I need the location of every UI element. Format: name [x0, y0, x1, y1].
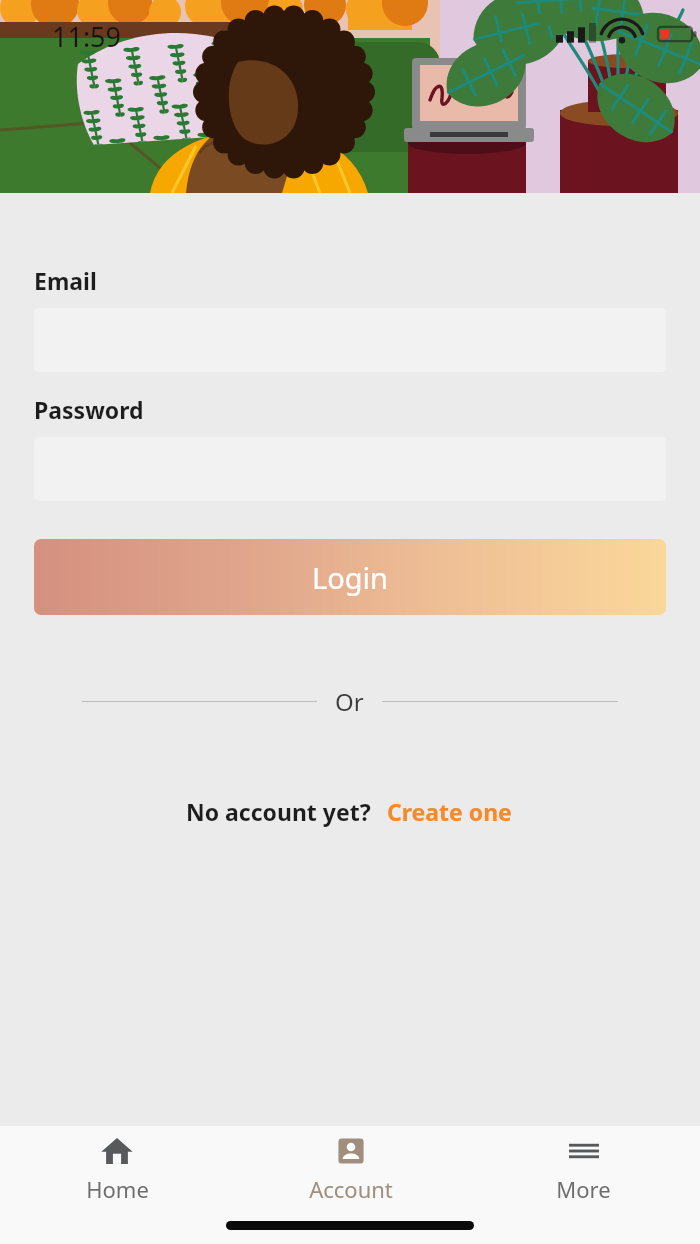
other: More: [567, 1134, 601, 1168]
staticText: 11:59: [52, 18, 122, 55]
staticText: No account yet?: [186, 796, 371, 827]
staticText: Create one: [387, 796, 512, 827]
staticText: Home: [86, 1174, 149, 1204]
button[interactable]: Account: [234, 1126, 467, 1212]
other: Home: [100, 1134, 134, 1168]
staticText: Account: [309, 1174, 393, 1204]
button[interactable]: More: [467, 1126, 700, 1212]
staticText: Password: [34, 394, 144, 425]
button[interactable]: Create one: [385, 794, 514, 829]
staticText: Or: [335, 685, 364, 718]
button[interactable]: Login: [34, 539, 666, 615]
staticText: Email: [34, 265, 97, 296]
staticText: More: [556, 1174, 611, 1204]
staticText: Login: [312, 558, 388, 597]
other: Account: [334, 1134, 368, 1168]
button[interactable]: Home: [0, 1126, 234, 1212]
